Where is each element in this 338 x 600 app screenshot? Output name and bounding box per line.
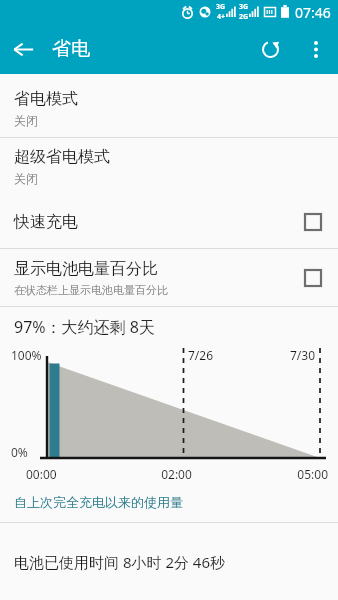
staticText: 快速充电 — [14, 212, 78, 232]
staticText: 0% — [11, 444, 28, 460]
button[interactable]: More options — [294, 27, 338, 71]
staticText: 100% — [11, 347, 42, 363]
staticText: 7/26 — [188, 347, 214, 363]
staticText: 关闭 — [14, 171, 38, 186]
button[interactable]: 电池已使用时间 8小时 2分 46秒 — [0, 523, 338, 600]
staticText: 超级省电模式 — [14, 147, 110, 167]
staticText: 省电 — [52, 37, 90, 61]
staticText: 省电模式 — [14, 89, 78, 109]
staticText: 自上次完全充电以来的使用量 — [14, 494, 183, 510]
staticText: 显示电池电量百分比 — [14, 259, 158, 279]
button[interactable]: Back — [0, 26, 46, 72]
staticText: 电池已使用时间 8小时 2分 46秒 — [14, 552, 226, 572]
staticText: 00:00 — [26, 466, 126, 482]
button[interactable]: 自上次完全充电以来的使用量 — [0, 490, 338, 522]
staticText: 07:46 — [295, 3, 331, 22]
staticText: 05:00 — [227, 466, 328, 482]
staticText: 3G — [239, 2, 249, 12]
button[interactable]: 省电模式 — [0, 80, 338, 137]
staticText: 3G — [216, 2, 226, 12]
button[interactable]: 快速充电 — [0, 195, 338, 248]
button[interactable]: 超级省电模式 — [0, 138, 338, 195]
staticText: 97%：大约还剩 8天 — [14, 316, 155, 338]
staticText: 4+ — [217, 12, 226, 22]
staticText: 7/30 — [290, 347, 316, 363]
button[interactable]: Refresh — [246, 25, 294, 73]
button[interactable]: 显示电池电量百分比 — [0, 249, 338, 306]
staticText: 2G — [239, 12, 249, 22]
staticText: 02:00 — [126, 466, 227, 482]
staticText: 关闭 — [14, 113, 38, 128]
staticText: 在状态栏上显示电池电量百分比 — [14, 283, 168, 297]
